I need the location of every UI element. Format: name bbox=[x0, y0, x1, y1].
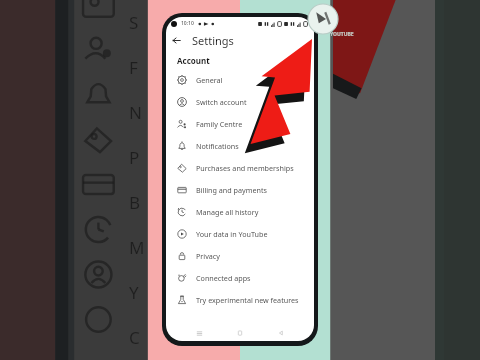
button[interactable]: General bbox=[166, 69, 314, 91]
staticText: Try experimental new features bbox=[196, 295, 299, 305]
staticText: Family Centre bbox=[196, 119, 243, 129]
staticText: Notifications bbox=[196, 141, 239, 151]
button[interactable]: Purchases and memberships bbox=[166, 157, 314, 179]
staticText: Y bbox=[129, 281, 139, 304]
button[interactable]: Channel logo bbox=[308, 4, 338, 34]
staticText: Billing and payments bbox=[196, 185, 267, 195]
button[interactable]: Back bbox=[166, 30, 186, 50]
staticText: Your data in YouTube bbox=[196, 229, 268, 239]
staticText: YOUTUBE bbox=[330, 31, 354, 38]
staticText: General bbox=[196, 75, 223, 85]
button[interactable]: Billing and payments bbox=[166, 179, 314, 201]
staticText: Account bbox=[177, 55, 210, 66]
button[interactable]: Connected apps bbox=[166, 267, 314, 289]
staticText: B bbox=[129, 191, 141, 214]
staticText: Purchases and memberships bbox=[196, 163, 294, 173]
staticText: Privacy bbox=[196, 251, 220, 261]
staticText: Connected apps bbox=[196, 273, 251, 283]
staticText: C bbox=[129, 326, 140, 349]
button[interactable]: Family Centre bbox=[166, 113, 314, 135]
staticText: Manage all history bbox=[196, 207, 259, 217]
button[interactable]: Try experimental new features bbox=[166, 289, 314, 311]
button[interactable]: Recents bbox=[191, 325, 207, 341]
staticText: Settings bbox=[192, 33, 234, 48]
button[interactable]: Manage all history bbox=[166, 201, 314, 223]
staticText: 10:10 bbox=[181, 20, 194, 27]
staticText: F bbox=[129, 56, 138, 79]
staticText: Switch account bbox=[196, 97, 247, 107]
button[interactable]: Your data in YouTube bbox=[166, 223, 314, 245]
staticText: P bbox=[129, 146, 140, 169]
button[interactable]: Back bbox=[273, 325, 289, 341]
staticText: S bbox=[129, 11, 139, 34]
button[interactable]: Switch account bbox=[166, 91, 314, 113]
button[interactable]: Home bbox=[232, 325, 248, 341]
staticText: M bbox=[129, 236, 145, 259]
button[interactable]: Privacy bbox=[166, 245, 314, 267]
staticText: N bbox=[129, 101, 142, 124]
button[interactable]: Notifications bbox=[166, 135, 314, 157]
